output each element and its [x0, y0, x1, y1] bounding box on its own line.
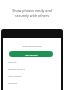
- button[interactable]: Albums: [3, 58, 61, 65]
- staticText: Settings: [8, 81, 18, 84]
- button[interactable]: Settings: [3, 79, 61, 86]
- button[interactable]: Your photos: [3, 72, 61, 79]
- staticText: Your photos: [8, 74, 22, 77]
- staticText: Show photos easily and securely with oth…: [2, 8, 62, 18]
- staticText: Share with friends: [22, 45, 42, 48]
- button[interactable]: Shared albums: [3, 65, 61, 72]
- staticText: Albums: [8, 60, 17, 63]
- button[interactable]: Get started: [9, 51, 53, 57]
- staticText: Shared albums: [8, 67, 25, 70]
- staticText: Get started: [25, 53, 38, 56]
